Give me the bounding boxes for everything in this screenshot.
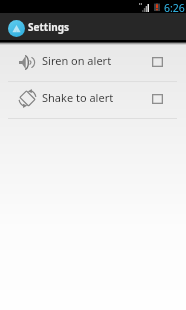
other: App icon: [8, 20, 25, 37]
button[interactable]: App icon: [0, 13, 78, 40]
button[interactable]: Siren on alert: [0, 45, 186, 81]
button[interactable]: Toggle Shake to alert: [148, 90, 166, 108]
staticText: Shake to alert: [42, 90, 114, 105]
staticText: Settings: [28, 20, 69, 34]
button[interactable]: Toggle Siren on alert: [148, 53, 166, 71]
staticText: Siren on alert: [42, 53, 112, 68]
button[interactable]: Shake to alert: [0, 82, 186, 118]
staticText: 6:26: [164, 1, 185, 14]
